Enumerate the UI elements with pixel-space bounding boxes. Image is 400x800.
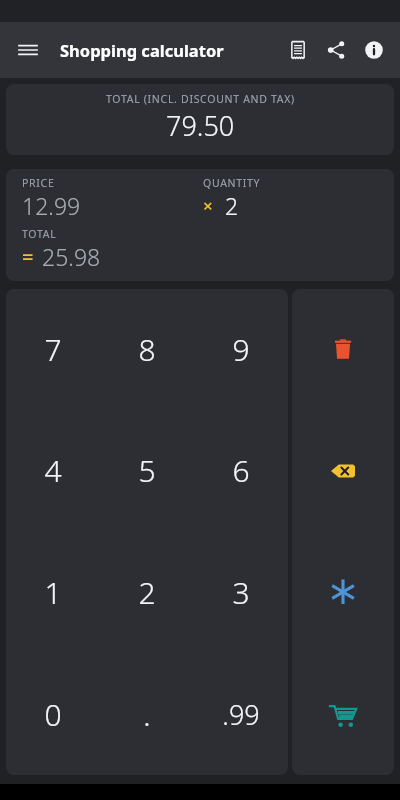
staticText: PRICE bbox=[22, 176, 55, 190]
staticText: 9 bbox=[232, 329, 250, 370]
button[interactable]: Share bbox=[317, 31, 355, 69]
staticText: 8 bbox=[138, 329, 156, 370]
staticText: 4 bbox=[44, 450, 62, 491]
staticText: 3 bbox=[232, 572, 250, 613]
button[interactable]: 6 bbox=[194, 410, 288, 531]
button[interactable]: Add to cart bbox=[292, 653, 394, 775]
staticText: 5 bbox=[138, 450, 156, 491]
staticText: QUANTITY bbox=[203, 176, 261, 190]
staticText: 1 bbox=[44, 572, 62, 613]
staticText: 12.99 bbox=[22, 190, 81, 221]
staticText: 2 bbox=[225, 190, 239, 221]
staticText: TOTAL bbox=[22, 227, 57, 241]
staticText: = bbox=[22, 243, 34, 270]
staticText: × bbox=[203, 194, 213, 217]
button[interactable]: Open navigation menu bbox=[10, 32, 46, 68]
button[interactable]: 1 bbox=[6, 531, 100, 653]
button[interactable]: 4 bbox=[6, 410, 100, 531]
button[interactable]: Info bbox=[355, 31, 393, 69]
button[interactable]: 5 bbox=[100, 410, 194, 531]
staticText: 2 bbox=[138, 572, 156, 613]
button[interactable]: .99 bbox=[194, 653, 288, 775]
button[interactable]: Backspace bbox=[292, 410, 394, 531]
button[interactable]: TOTAL (INCL. DISCOUNT AND TAX) bbox=[6, 84, 394, 155]
button[interactable]: Shopping list bbox=[279, 31, 317, 69]
button[interactable]: Clear all bbox=[292, 289, 394, 410]
button[interactable]: 2 bbox=[100, 531, 194, 653]
staticText: TOTAL (INCL. DISCOUNT AND TAX) bbox=[106, 92, 295, 106]
staticText: 0 bbox=[44, 694, 62, 735]
button[interactable]: 9 bbox=[194, 289, 288, 410]
button[interactable]: 7 bbox=[6, 289, 100, 410]
button[interactable]: 8 bbox=[100, 289, 194, 410]
staticText: 79.50 bbox=[166, 107, 235, 144]
staticText: 7 bbox=[44, 329, 62, 370]
button[interactable]: Multiply quantity bbox=[292, 531, 394, 653]
staticText: 25.98 bbox=[42, 241, 101, 272]
staticText: Shopping calculator bbox=[60, 39, 224, 61]
staticText: 6 bbox=[232, 450, 250, 491]
button[interactable]: 3 bbox=[194, 531, 288, 653]
staticText: .99 bbox=[222, 696, 260, 733]
button[interactable]: . bbox=[100, 653, 194, 775]
button[interactable]: 0 bbox=[6, 653, 100, 775]
button[interactable]: PRICE bbox=[6, 169, 394, 281]
staticText: . bbox=[143, 694, 151, 735]
